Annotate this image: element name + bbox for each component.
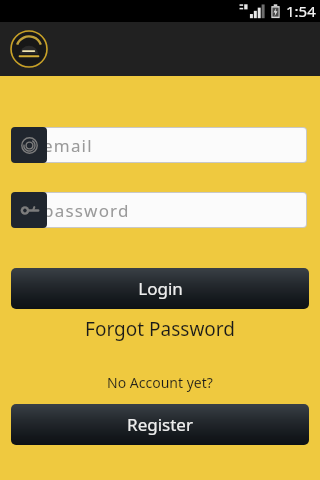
staticText: password: [43, 199, 130, 222]
button[interactable]: Forgot Password: [0, 316, 320, 342]
button[interactable]: Email: [11, 127, 47, 163]
button[interactable]: password: [30, 193, 306, 227]
button[interactable]: email: [30, 128, 306, 162]
staticText: Forgot Password: [85, 316, 235, 342]
button[interactable]: Password: [11, 192, 47, 228]
staticText: Login: [138, 277, 183, 300]
staticText: 1:54: [286, 1, 316, 21]
button[interactable]: Register: [11, 404, 309, 445]
button[interactable]: Login: [11, 268, 309, 309]
staticText: email: [43, 134, 93, 157]
staticText: No Account yet?: [107, 373, 213, 392]
button[interactable]: App logo: [9, 29, 49, 69]
staticText: Register: [127, 413, 193, 436]
